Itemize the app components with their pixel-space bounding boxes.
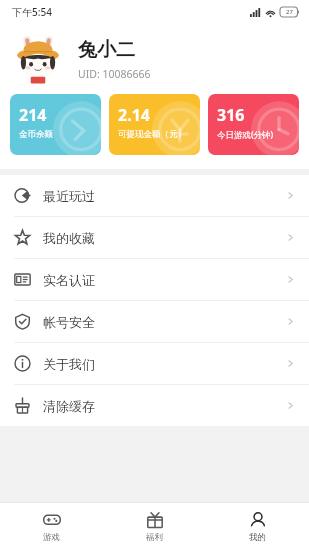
- staticText: 可提现金额（元）: [118, 129, 186, 140]
- staticText: 我的: [249, 532, 266, 543]
- staticText: 我的收藏: [43, 230, 286, 246]
- staticText: 今日游戏(分钟): [217, 129, 274, 141]
- staticText: 27: [286, 8, 293, 16]
- staticText: 游戏: [43, 532, 60, 543]
- button[interactable]: 福利: [103, 503, 206, 550]
- staticText: 帐号安全: [43, 314, 286, 330]
- button[interactable]: Avatar: [12, 33, 64, 85]
- staticText: UID: 10086666: [78, 67, 151, 81]
- staticText: 关于我们: [43, 356, 286, 372]
- button[interactable]: 清除缓存: [0, 385, 309, 426]
- staticText: 最近玩过: [43, 188, 286, 204]
- button[interactable]: 2.14: [109, 94, 200, 155]
- button[interactable]: 最近玩过: [0, 175, 309, 216]
- button[interactable]: 我的收藏: [0, 217, 309, 258]
- staticText: 316: [217, 104, 245, 126]
- staticText: 金币余额: [19, 129, 53, 140]
- button[interactable]: 游戏: [0, 503, 103, 550]
- button[interactable]: 214: [10, 94, 101, 155]
- staticText: 清除缓存: [43, 398, 286, 414]
- button[interactable]: 316: [208, 94, 299, 155]
- button[interactable]: 实名认证: [0, 259, 309, 300]
- button[interactable]: 帐号安全: [0, 301, 309, 342]
- button[interactable]: 我的: [206, 503, 309, 550]
- staticText: 2.14: [118, 104, 150, 126]
- staticText: 实名认证: [43, 272, 286, 288]
- button[interactable]: 关于我们: [0, 343, 309, 384]
- staticText: 福利: [146, 532, 163, 543]
- staticText: 兔小二: [78, 38, 135, 62]
- staticText: 下午5:54: [12, 5, 52, 19]
- staticText: 214: [19, 104, 47, 126]
